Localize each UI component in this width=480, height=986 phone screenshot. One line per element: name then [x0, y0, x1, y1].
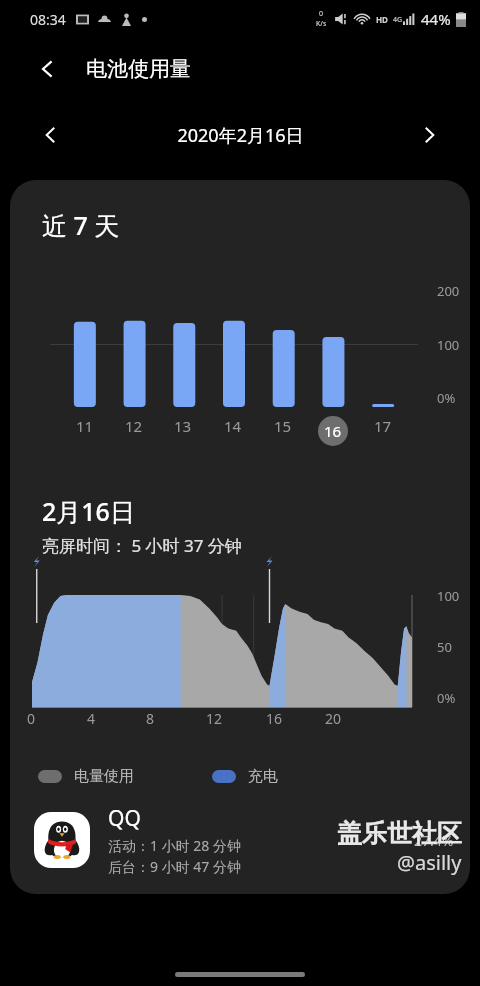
staticText: 充电 [248, 767, 278, 786]
staticText: @asilly [397, 849, 462, 876]
staticText: 11 [76, 416, 94, 436]
staticText: 16 [324, 421, 342, 441]
staticText: 08:34 [30, 10, 66, 29]
staticText: 近 7 天 [42, 208, 120, 242]
staticText: 14 [224, 416, 242, 436]
staticText: 16 [266, 709, 283, 728]
staticText: 100 [437, 587, 460, 605]
staticText: 27.4% [414, 831, 454, 850]
button[interactable]: Next day [408, 114, 450, 156]
staticText: 200 [437, 282, 460, 300]
staticText: 0% [437, 689, 456, 707]
staticText: QQ [108, 804, 141, 833]
staticText: 100 [437, 336, 460, 354]
staticText: 盖乐世社区 [337, 818, 462, 849]
staticText: 亮屏时间： 5 小时 37 分钟 [42, 534, 242, 557]
staticText: 后台：9 小时 47 分钟 [108, 857, 241, 876]
staticText: 活动：1 小时 28 分钟 [108, 836, 241, 855]
staticText: 15 [274, 416, 292, 436]
staticText: 13 [174, 416, 192, 436]
staticText: 2020年2月16日 [177, 123, 304, 148]
staticText: 20 [325, 709, 342, 728]
staticText: HD [376, 14, 388, 25]
staticText: 4 [87, 709, 96, 728]
staticText: 12 [125, 416, 143, 436]
staticText: 电量使用 [74, 767, 134, 786]
staticText: 17 [374, 416, 392, 436]
button[interactable]: QQ [10, 804, 470, 876]
staticText: 44% [421, 9, 451, 29]
staticText: 0 [319, 9, 324, 19]
staticText: 50 [437, 638, 452, 656]
staticText: K/s [316, 19, 327, 29]
button[interactable]: Back [28, 49, 68, 89]
staticText: 电池使用量 [86, 56, 191, 82]
staticText: 8 [146, 709, 155, 728]
staticText: 0% [437, 389, 456, 407]
staticText: 2月16日 [42, 494, 135, 528]
staticText: 0 [27, 709, 36, 728]
button[interactable]: Previous day [30, 114, 72, 156]
staticText: 12 [206, 709, 223, 728]
staticText: 4G [393, 15, 403, 25]
